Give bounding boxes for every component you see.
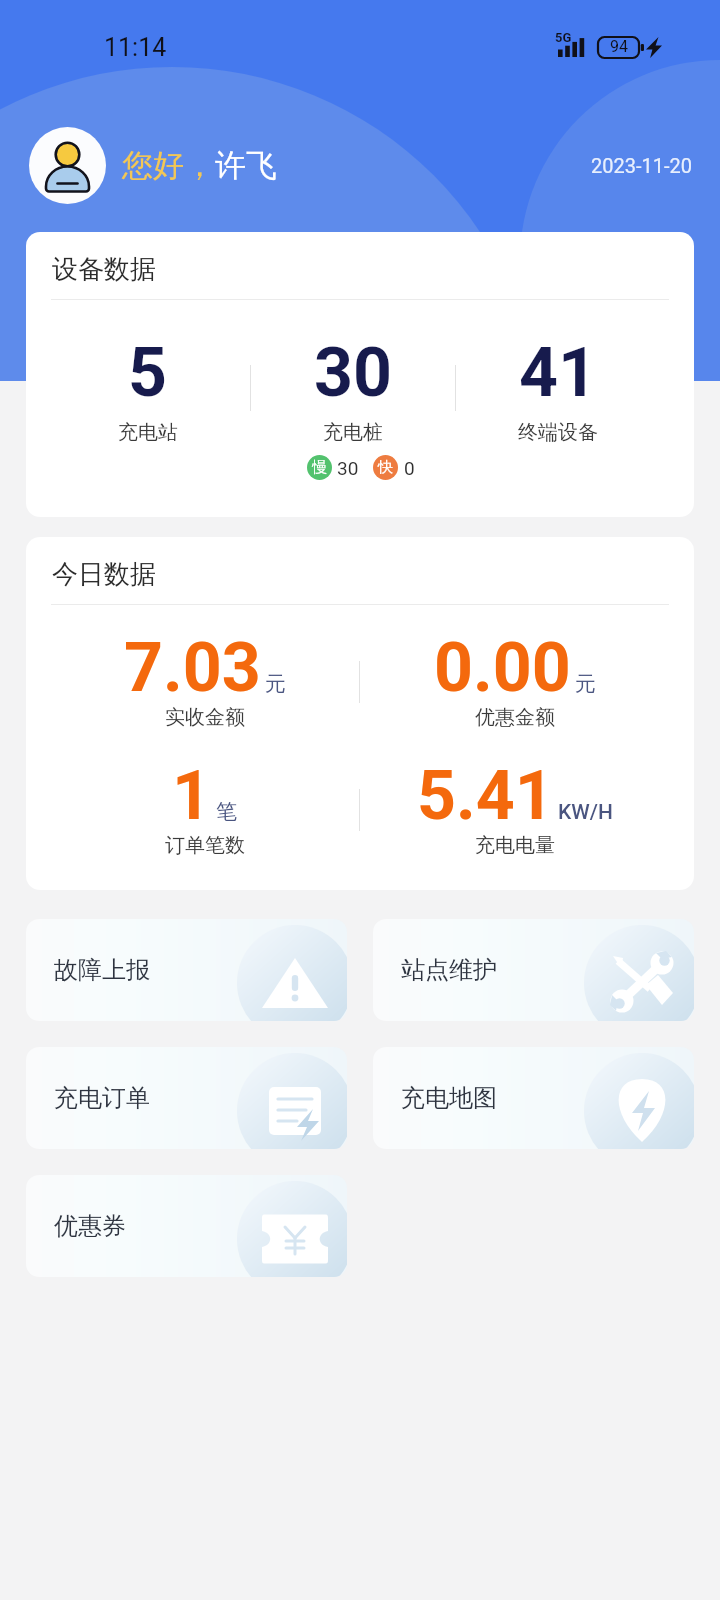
staticText: 元 [265, 671, 286, 697]
staticText: 许飞 [215, 146, 277, 185]
staticText: 1 [172, 756, 212, 836]
staticText: 优惠金额 [475, 705, 555, 730]
staticText: 94 [610, 37, 628, 56]
button[interactable]: 站点维护 [373, 919, 694, 1021]
staticText: 7.03 [124, 628, 261, 708]
staticText: 充电地图 [401, 1083, 497, 1113]
staticText: 今日数据 [52, 558, 156, 591]
staticText: 41 [519, 333, 598, 413]
staticText: 故障上报 [54, 955, 150, 985]
staticText: 充电订单 [54, 1083, 150, 1113]
staticText: 充电站 [118, 420, 178, 445]
staticText: 元 [575, 671, 596, 697]
staticText: 0.00 [434, 628, 571, 708]
staticText: KW/H [558, 800, 613, 825]
staticText: 2023-11-20 [591, 154, 692, 177]
staticText: 11:14 [104, 33, 167, 62]
staticText: 快 [378, 458, 393, 477]
button[interactable]: 故障上报 [26, 919, 347, 1021]
staticText: 实收金额 [165, 705, 245, 730]
button[interactable]: 优惠券 [26, 1175, 347, 1277]
staticText: 笔 [216, 799, 237, 825]
staticText: 0 [404, 457, 415, 479]
staticText: 充电桩 [323, 420, 383, 445]
staticText: 5 [128, 333, 168, 413]
staticText: 终端设备 [518, 420, 598, 445]
staticText: 站点维护 [401, 955, 497, 985]
staticText: 30 [337, 457, 359, 479]
button[interactable]: 充电地图 [373, 1047, 694, 1149]
staticText: 5G [555, 30, 572, 45]
button[interactable]: Profile [29, 127, 106, 204]
staticText: 5.41 [417, 756, 554, 836]
staticText: 充电电量 [475, 833, 555, 858]
staticText: 优惠券 [54, 1211, 126, 1241]
staticText: 订单笔数 [165, 833, 245, 858]
button[interactable]: 充电订单 [26, 1047, 347, 1149]
staticText: 您好， [122, 146, 215, 185]
staticText: 慢 [312, 458, 327, 477]
staticText: 设备数据 [52, 253, 156, 286]
staticText: 30 [314, 333, 393, 413]
